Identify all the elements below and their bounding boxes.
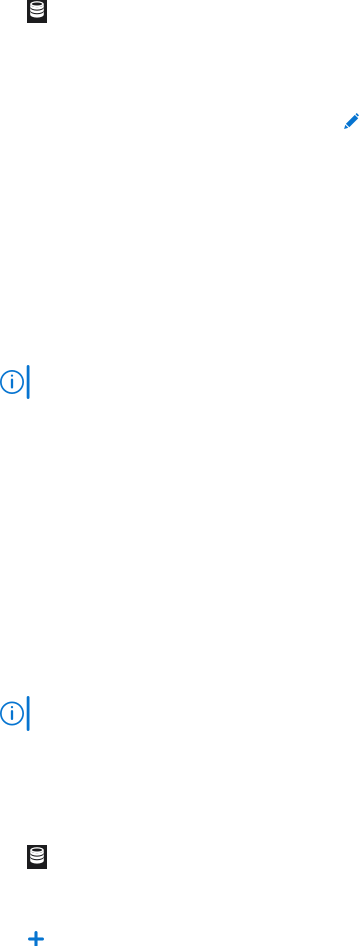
button[interactable]: Workspace xyxy=(27,0,47,23)
button[interactable]: Compose xyxy=(344,113,359,129)
button[interactable]: Add attachment xyxy=(28,931,44,946)
